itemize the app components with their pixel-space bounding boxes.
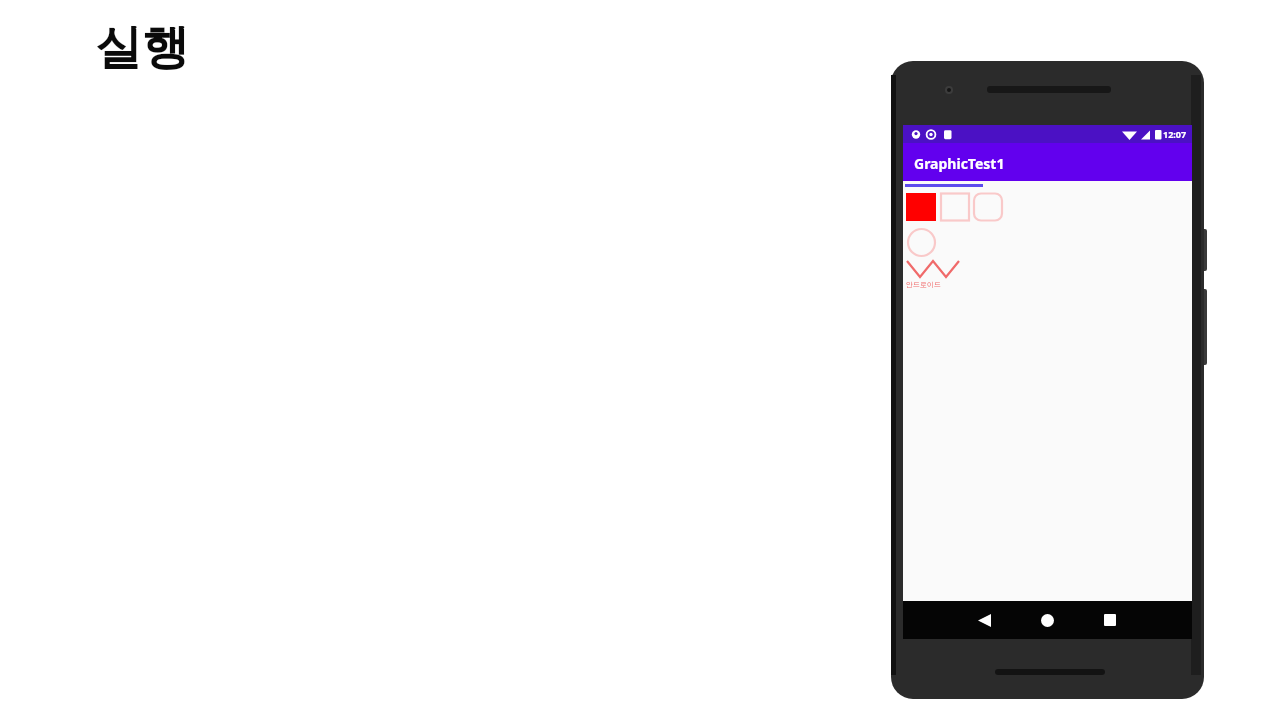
staticText: 실행 — [95, 18, 189, 77]
button[interactable]: Home — [1016, 601, 1078, 639]
staticText: 12:07 — [1163, 128, 1187, 140]
staticText: GraphicTest1 — [914, 154, 1005, 173]
button[interactable]: GraphicTest1 — [903, 143, 1192, 181]
button[interactable]: Recent apps — [1079, 601, 1141, 639]
staticText: 안드로이드 — [906, 280, 941, 289]
button[interactable]: Back — [953, 601, 1015, 639]
